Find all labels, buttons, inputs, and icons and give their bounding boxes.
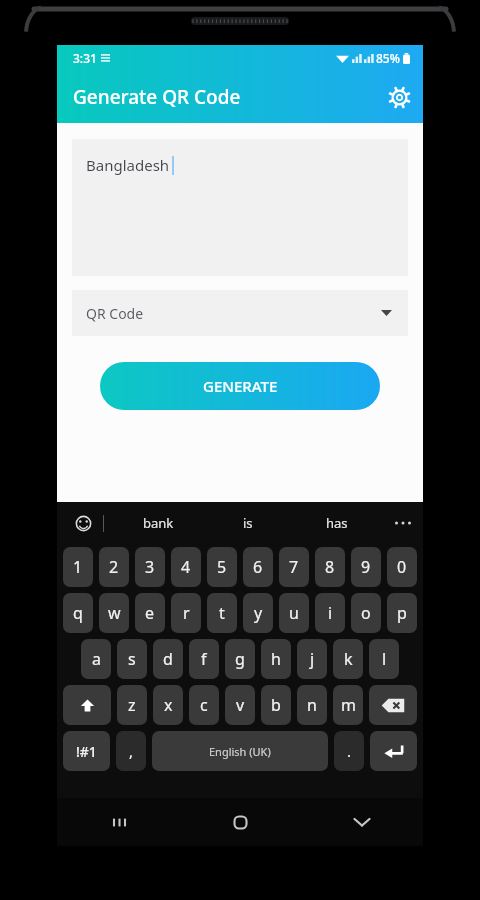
button[interactable]: Bangladesh (72, 139, 408, 276)
button[interactable]: n (297, 685, 327, 725)
button[interactable]: j (297, 639, 327, 679)
staticText: k (344, 648, 353, 670)
staticText: 1 (73, 556, 83, 578)
button[interactable]: Enter (370, 731, 417, 771)
staticText: c (200, 694, 208, 716)
button[interactable]: i (315, 593, 345, 633)
button[interactable]: d (153, 639, 183, 679)
staticText: . (347, 741, 352, 761)
button[interactable]: 3 (135, 547, 165, 587)
button[interactable]: m (333, 685, 363, 725)
staticText: p (397, 602, 407, 624)
button[interactable]: Shift (63, 685, 111, 725)
button[interactable]: has (292, 502, 381, 544)
staticText: 3 (145, 556, 155, 578)
button[interactable]: c (189, 685, 219, 725)
button[interactable]: , (116, 731, 146, 771)
staticText: GENERATE (203, 376, 278, 396)
staticText: a (92, 648, 101, 670)
button[interactable]: . (334, 731, 364, 771)
staticText: t (219, 602, 225, 624)
button[interactable]: QR Code (72, 290, 408, 336)
staticText: z (128, 694, 136, 716)
button[interactable]: 5 (207, 547, 237, 587)
button[interactable]: 7 (279, 547, 309, 587)
button[interactable]: More suggestions (381, 502, 423, 544)
staticText: w (108, 602, 121, 624)
staticText: 6 (253, 556, 263, 578)
staticText: i (328, 602, 333, 624)
staticText: !#1 (76, 742, 97, 761)
button[interactable]: u (279, 593, 309, 633)
button[interactable]: b (261, 685, 291, 725)
button[interactable]: p (387, 593, 417, 633)
button[interactable]: a (81, 639, 111, 679)
staticText: f (201, 648, 207, 670)
staticText: u (289, 602, 299, 624)
staticText: 9 (361, 556, 371, 578)
button[interactable]: GENERATE (100, 362, 380, 410)
staticText: 3:31 (73, 50, 97, 66)
button[interactable]: l (369, 639, 399, 679)
staticText: h (271, 648, 281, 670)
button[interactable]: w (99, 593, 129, 633)
button[interactable]: Hide keyboard (301, 798, 423, 846)
staticText: r (183, 602, 190, 624)
staticText: Generate QR Code (73, 84, 375, 110)
button[interactable]: bank (113, 502, 203, 544)
button[interactable]: x (153, 685, 183, 725)
staticText: QR Code (86, 304, 144, 323)
button[interactable]: 2 (99, 547, 129, 587)
button[interactable]: 6 (243, 547, 273, 587)
staticText: s (128, 648, 136, 670)
button[interactable]: Settings (375, 73, 423, 121)
button[interactable]: h (261, 639, 291, 679)
staticText: b (271, 694, 281, 716)
button[interactable]: 9 (351, 547, 381, 587)
staticText: v (236, 694, 245, 716)
button[interactable]: Recents (57, 798, 179, 846)
staticText: e (145, 602, 155, 624)
button[interactable]: q (63, 593, 93, 633)
button[interactable]: k (333, 639, 363, 679)
button[interactable]: v (225, 685, 255, 725)
button[interactable]: Backspace (369, 685, 417, 725)
button[interactable]: r (171, 593, 201, 633)
button[interactable]: 8 (315, 547, 345, 587)
staticText: m (341, 694, 356, 716)
staticText: 2 (109, 556, 119, 578)
button[interactable]: Symbols (63, 731, 110, 771)
staticText: o (361, 602, 371, 624)
staticText: is (243, 514, 253, 532)
button[interactable]: f (189, 639, 219, 679)
button[interactable]: Space (152, 731, 328, 771)
button[interactable]: o (351, 593, 381, 633)
button[interactable]: e (135, 593, 165, 633)
staticText: 4 (181, 556, 191, 578)
button[interactable]: 0 (387, 547, 417, 587)
staticText: bank (143, 514, 174, 532)
staticText: 5 (217, 556, 227, 578)
staticText: Bangladesh (86, 155, 170, 175)
staticText: q (73, 602, 83, 624)
button[interactable]: Emoji (70, 510, 96, 536)
staticText: 0 (397, 556, 407, 578)
staticText: has (326, 514, 348, 532)
button[interactable]: Home (179, 798, 301, 846)
button[interactable]: 4 (171, 547, 201, 587)
staticText: 7 (289, 556, 299, 578)
button[interactable]: z (117, 685, 147, 725)
button[interactable]: is (203, 502, 292, 544)
staticText: g (235, 648, 245, 670)
staticText: English (UK) (209, 744, 271, 759)
button[interactable]: 1 (63, 547, 93, 587)
staticText: d (163, 648, 173, 670)
staticText: , (129, 741, 134, 761)
button[interactable]: s (117, 639, 147, 679)
button[interactable]: g (225, 639, 255, 679)
button[interactable]: t (207, 593, 237, 633)
staticText: 8 (325, 556, 335, 578)
staticText: j (310, 648, 315, 670)
button[interactable]: y (243, 593, 273, 633)
staticText: 85% (376, 50, 400, 66)
